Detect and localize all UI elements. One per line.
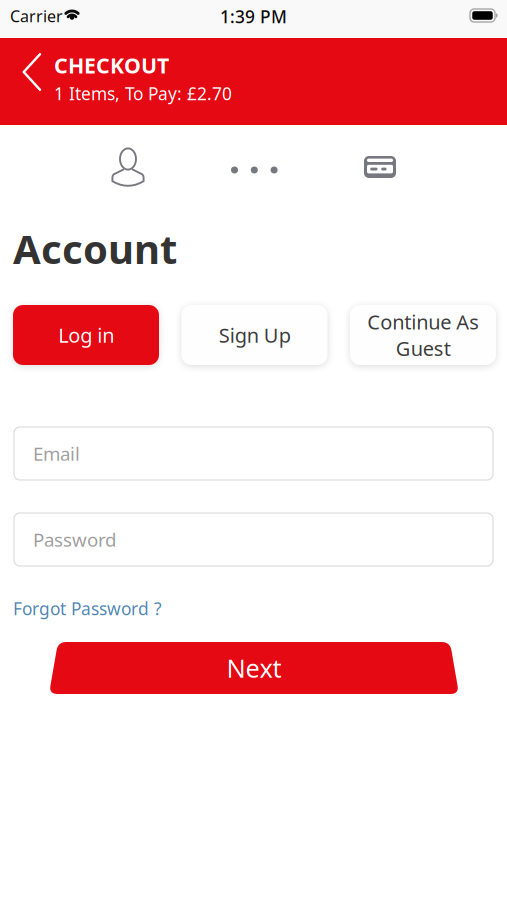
- staticText: Continue As Guest: [367, 308, 479, 361]
- staticText: Next: [226, 651, 281, 685]
- staticText: Carrier: [10, 5, 63, 27]
- button[interactable]: Sign Up: [181, 305, 327, 365]
- staticText: Account: [13, 222, 177, 275]
- staticText: Log in: [58, 322, 114, 348]
- staticText: 1:39 PM: [220, 5, 287, 28]
- staticText: Email: [33, 441, 80, 466]
- button[interactable]: Back: [10, 46, 54, 98]
- button[interactable]: Forgot Password ?: [11, 593, 164, 624]
- staticText: 1 Items, To Pay: £2.70: [54, 82, 232, 105]
- staticText: Password: [33, 527, 116, 552]
- button[interactable]: Next: [49, 642, 459, 694]
- staticText: CHECKOUT: [54, 51, 169, 79]
- staticText: Forgot Password ?: [13, 597, 162, 620]
- staticText: Sign Up: [218, 322, 290, 348]
- button[interactable]: Continue As Guest: [350, 305, 496, 365]
- button[interactable]: Log in: [13, 305, 159, 365]
